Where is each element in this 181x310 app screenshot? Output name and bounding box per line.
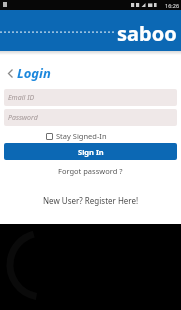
staticText: 16:26 <box>165 2 180 9</box>
staticText: saboo <box>117 20 177 47</box>
button[interactable]: Forgot password ? <box>58 166 123 176</box>
button[interactable]: Stay Signed-In <box>46 131 107 141</box>
staticText: Stay Signed-In <box>56 131 107 141</box>
staticText: Password <box>8 113 38 123</box>
button[interactable]: Email ID <box>4 89 177 106</box>
staticText: Sign In <box>78 147 104 157</box>
button[interactable]: New User? Register Here! <box>43 195 139 206</box>
button[interactable]: Sign In <box>4 143 177 160</box>
button[interactable]: Login <box>7 64 51 82</box>
button[interactable]: Password <box>4 109 177 126</box>
staticText: Login <box>17 64 51 82</box>
staticText: Email ID <box>8 93 35 103</box>
